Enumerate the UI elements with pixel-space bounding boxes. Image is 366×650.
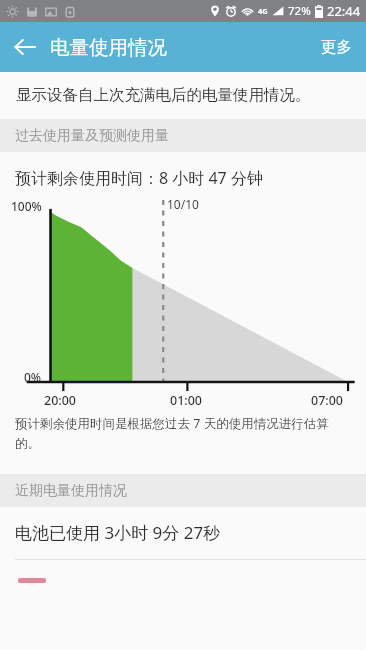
staticText: 01:00 (170, 392, 203, 407)
staticText: 过去使用量及预测使用量 (15, 127, 169, 145)
staticText: 10/10 (167, 196, 199, 212)
staticText: 20:00 (44, 392, 77, 407)
staticText: 22:44 (327, 2, 361, 20)
staticText: 07:00 (311, 392, 344, 407)
staticText: 显示设备自上次充满电后的电量使用情况。 (16, 85, 311, 105)
staticText: 电量使用情况 (50, 35, 167, 60)
staticText: 预计剩余使用时间：8 小时 47 分钟 (15, 167, 263, 189)
button[interactable] (0, 569, 366, 591)
staticText: 近期电量使用情况 (15, 482, 127, 500)
staticText: 更多 (321, 37, 352, 57)
staticText: 电池已使用 3小时 9分 27秒 (15, 521, 221, 544)
staticText: 0% (24, 369, 42, 385)
button[interactable]: 更多 (307, 25, 366, 69)
button[interactable]: Back (7, 29, 43, 65)
staticText: 预计剩余使用时间是根据您过去 7 天的使用情况进行估算的。 (15, 415, 346, 452)
staticText: 4G (258, 6, 268, 16)
staticText: 100% (11, 198, 42, 214)
staticText: 72% (288, 3, 311, 19)
